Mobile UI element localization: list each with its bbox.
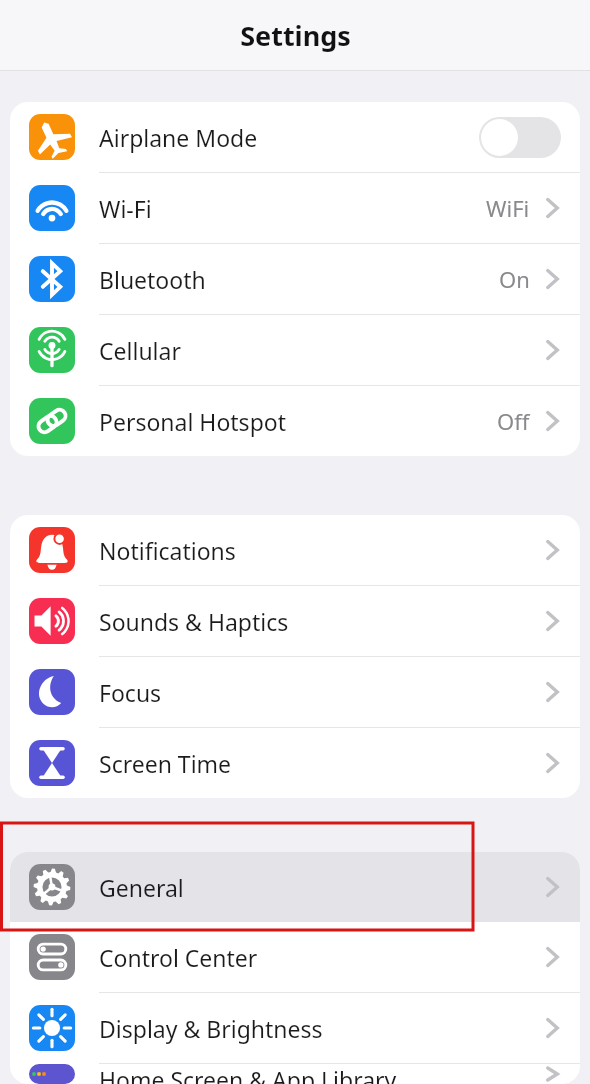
button[interactable]: Cellular <box>10 315 580 385</box>
staticText: Screen Time <box>99 748 232 779</box>
staticText: General <box>99 872 184 903</box>
button[interactable]: Control Center <box>10 922 580 992</box>
staticText: Display & Brightness <box>99 1013 323 1044</box>
staticText: Sounds & Haptics <box>99 606 289 637</box>
button[interactable]: Personal Hotspot <box>10 386 580 456</box>
staticText: Cellular <box>99 335 181 366</box>
staticText: Settings <box>240 17 351 54</box>
staticText: Focus <box>99 677 162 708</box>
staticText: Bluetooth <box>99 264 206 295</box>
button[interactable]: Notifications <box>10 515 580 585</box>
button[interactable]: Bluetooth <box>10 244 580 314</box>
staticText: Notifications <box>99 535 236 566</box>
button[interactable]: Screen Time <box>10 728 580 798</box>
staticText: Control Center <box>99 942 258 973</box>
button[interactable]: Home Screen & App Library <box>10 1064 580 1084</box>
staticText: Wi-Fi <box>99 193 152 224</box>
staticText: Off <box>497 406 530 436</box>
staticText: On <box>499 264 530 294</box>
button[interactable]: Airplane Mode <box>10 102 580 172</box>
button[interactable]: General <box>10 852 580 922</box>
staticText: WiFi <box>486 193 530 223</box>
button[interactable]: Display & Brightness <box>10 993 580 1063</box>
button[interactable]: Focus <box>10 657 580 727</box>
button[interactable]: Wi-Fi <box>10 173 580 243</box>
button[interactable]: Airplane Mode toggle <box>479 117 561 158</box>
staticText: Personal Hotspot <box>99 406 286 437</box>
staticText: Home Screen & App Library <box>99 1064 397 1084</box>
button[interactable]: Sounds & Haptics <box>10 586 580 656</box>
staticText: Airplane Mode <box>99 122 258 153</box>
